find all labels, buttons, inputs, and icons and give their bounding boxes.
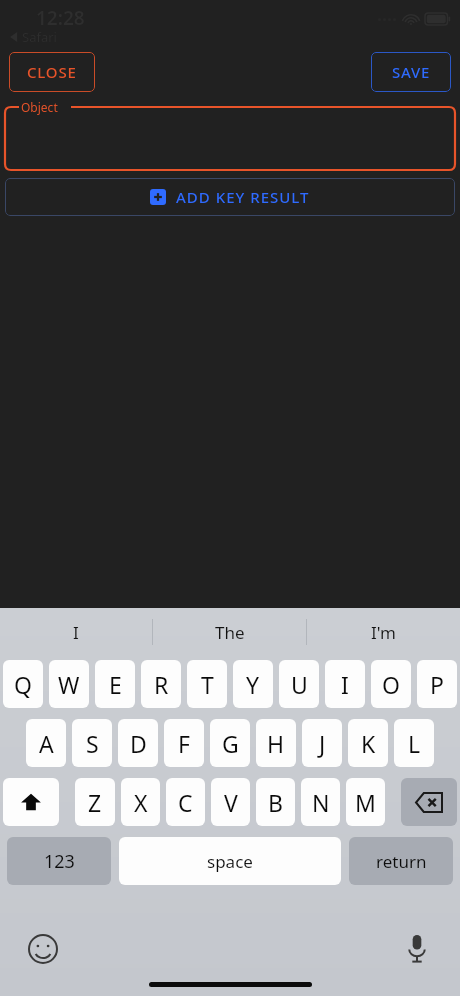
button[interactable]: I (325, 660, 365, 708)
button[interactable]: A (26, 719, 66, 767)
staticText: The (215, 621, 245, 644)
staticText: Z (88, 787, 102, 818)
staticText: ADD KEY RESULT (176, 187, 310, 207)
button[interactable]: ADD KEY RESULT (5, 178, 455, 216)
staticText: L (408, 728, 421, 759)
staticText: F (178, 728, 190, 759)
button[interactable]: F (164, 719, 204, 767)
button[interactable]: X (121, 778, 160, 826)
button[interactable]: R (141, 660, 181, 708)
staticText: Object (21, 99, 58, 115)
staticText: CLOSE (27, 62, 77, 82)
button[interactable]: Z (75, 778, 115, 826)
staticText: Y (246, 669, 260, 700)
staticText: G (222, 728, 239, 759)
staticText: S (86, 728, 99, 759)
staticText: V (224, 787, 238, 818)
button[interactable]: 123 (7, 837, 111, 885)
staticText: C (178, 787, 193, 818)
button[interactable]: SAVE (371, 52, 451, 92)
staticText: H (267, 728, 285, 759)
button[interactable]: B (256, 778, 295, 826)
staticText: I'm (371, 621, 396, 644)
button[interactable]: K (348, 719, 388, 767)
button[interactable]: I'm (307, 608, 460, 656)
button[interactable]: P (417, 660, 457, 708)
button[interactable]: T (187, 660, 227, 708)
button[interactable]: The (153, 608, 306, 656)
staticText: return (376, 850, 427, 873)
staticText: N (312, 787, 330, 818)
staticText: D (130, 728, 147, 759)
staticText: 12:28 (36, 5, 85, 31)
button[interactable]: L (394, 719, 434, 767)
staticText: W (58, 669, 80, 700)
staticText: J (319, 728, 326, 759)
button[interactable]: H (256, 719, 296, 767)
button[interactable]: E (95, 660, 135, 708)
button[interactable]: CLOSE (9, 52, 95, 92)
button[interactable]: Emoji keyboard (22, 928, 64, 970)
staticText: A (39, 728, 54, 759)
staticText: P (430, 669, 444, 700)
staticText: space (207, 850, 253, 873)
staticText: M (355, 787, 376, 818)
button[interactable]: O (371, 660, 411, 708)
button[interactable]: return (349, 837, 453, 885)
staticText: U (291, 669, 308, 700)
button[interactable]: V (211, 778, 250, 826)
staticText: X (134, 787, 148, 818)
staticText: SAVE (392, 62, 431, 82)
button[interactable]: Shift (3, 778, 59, 826)
staticText: B (268, 787, 283, 818)
button[interactable]: Backspace (401, 778, 457, 826)
staticText: K (361, 728, 376, 759)
staticText: O (382, 669, 400, 700)
button[interactable]: C (166, 778, 205, 826)
button[interactable]: Y (233, 660, 273, 708)
button[interactable]: G (210, 719, 250, 767)
button[interactable]: Q (3, 660, 43, 708)
button[interactable]: W (49, 660, 89, 708)
button[interactable]: J (302, 719, 342, 767)
button[interactable]: D (118, 719, 158, 767)
staticText: E (109, 669, 122, 700)
button[interactable]: M (346, 778, 385, 826)
button[interactable]: I (0, 608, 152, 656)
button[interactable]: S (72, 719, 112, 767)
button[interactable]: space (119, 837, 341, 885)
button[interactable]: Dictation (396, 928, 438, 970)
staticText: R (154, 669, 169, 700)
staticText: I (73, 621, 79, 644)
staticText: Q (14, 669, 32, 700)
staticText: Safari (22, 28, 57, 46)
staticText: 123 (44, 849, 75, 874)
staticText: T (201, 669, 214, 700)
button[interactable]: U (279, 660, 319, 708)
staticText: I (341, 669, 349, 700)
button[interactable]: N (301, 778, 340, 826)
